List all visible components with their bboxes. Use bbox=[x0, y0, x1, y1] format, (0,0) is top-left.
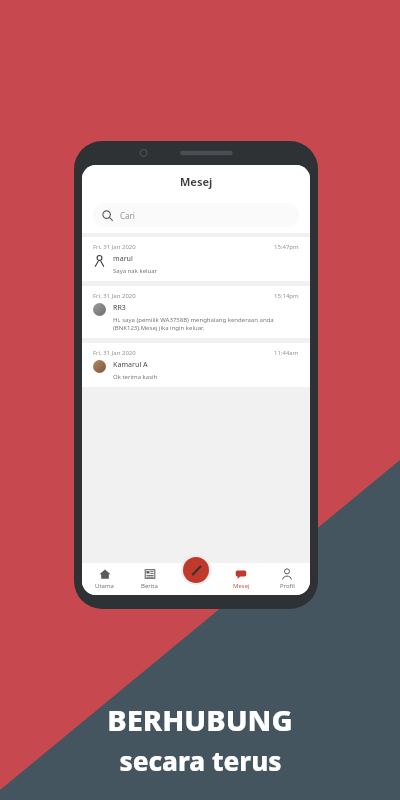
staticText: 15:47pm bbox=[274, 243, 299, 251]
staticText: marul bbox=[113, 254, 133, 264]
button[interactable]: Utama bbox=[82, 563, 127, 595]
button[interactable]: Fri, 31 Jan 2020 bbox=[82, 343, 310, 387]
button[interactable]: Compose message bbox=[183, 557, 209, 583]
button[interactable]: Profil bbox=[264, 563, 310, 595]
button[interactable]: Berita bbox=[127, 563, 172, 595]
button[interactable]: Fri, 31 Jan 2020 bbox=[82, 286, 310, 338]
staticText: Utama bbox=[95, 582, 114, 590]
staticText: 15:14pm bbox=[274, 292, 299, 300]
button[interactable]: Mesej bbox=[218, 563, 264, 595]
button[interactable]: Cari bbox=[93, 203, 299, 227]
staticText: secara terus bbox=[119, 743, 282, 778]
staticText: Cari bbox=[120, 210, 135, 221]
staticText: Mesej bbox=[180, 174, 213, 189]
staticText: Fri, 31 Jan 2020 bbox=[93, 349, 136, 357]
staticText: Ok terima kasih bbox=[113, 373, 158, 381]
staticText: Saya nak keluar bbox=[113, 267, 158, 275]
staticText: (BNK123).Mesej jika ingin keluar. bbox=[113, 324, 205, 332]
staticText: Profil bbox=[280, 582, 295, 590]
button[interactable]: Fri, 31 Jan 2020 bbox=[82, 237, 310, 281]
staticText: Fri, 31 Jan 2020 bbox=[93, 292, 136, 300]
staticText: RR3 bbox=[113, 303, 126, 313]
staticText: Mesej bbox=[233, 582, 250, 590]
staticText: Kamarul A bbox=[113, 360, 148, 370]
staticText: Hi, saya (pemilik WA3758B) menghalang ke… bbox=[113, 316, 274, 324]
staticText: Fri, 31 Jan 2020 bbox=[93, 243, 136, 251]
staticText: Berita bbox=[141, 582, 158, 590]
staticText: 11:44am bbox=[274, 349, 299, 357]
staticText: BERHUBUNG bbox=[107, 700, 293, 739]
